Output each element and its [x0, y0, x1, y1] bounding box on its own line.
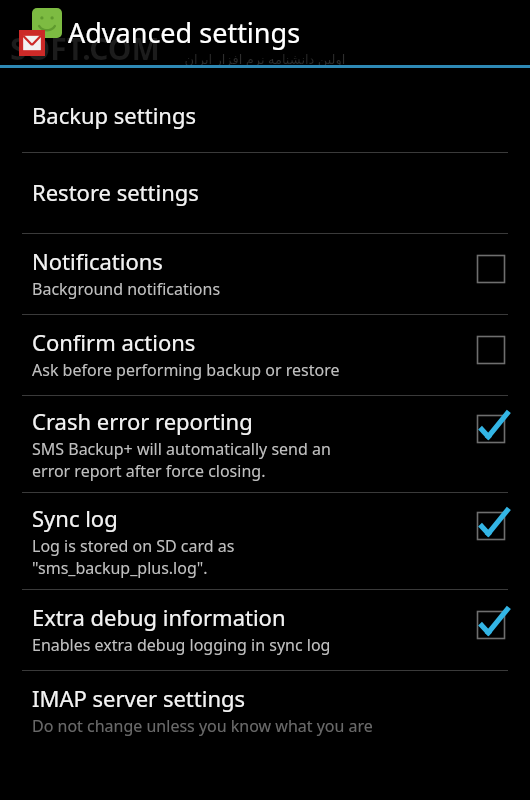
other: Unchecked [474, 252, 508, 286]
staticText: "sms_backup_plus.log". [32, 557, 208, 579]
staticText: Sync log [32, 503, 118, 533]
staticText: Ask before performing backup or restore [32, 359, 340, 381]
button[interactable]: Extra debug information [0, 590, 530, 670]
staticText: Crash error reporting [32, 406, 253, 436]
staticText: Notifications [32, 246, 163, 276]
staticText: SMS Backup+ will automatically send an [32, 438, 331, 460]
staticText: Restore settings [32, 177, 199, 207]
other: Checked [474, 509, 508, 543]
button[interactable]: Crash error reporting [0, 396, 530, 492]
button[interactable]: Confirm actions [0, 315, 530, 395]
staticText: error report after force closing. [32, 460, 266, 482]
staticText: IMAP server settings [32, 683, 246, 713]
staticText: Log is stored on SD card as [32, 535, 235, 557]
staticText: اولین دانشنامه نرم افزار ایران [0, 50, 530, 68]
staticText: Advanced settings [68, 14, 301, 51]
button[interactable]: Advanced settings [0, 0, 530, 62]
staticText: Extra debug information [32, 602, 286, 632]
staticText: Backup settings [32, 100, 196, 130]
other: Checked [474, 412, 508, 446]
button[interactable]: Backup settings [0, 84, 530, 152]
staticText: Background notifications [32, 278, 221, 300]
button[interactable]: IMAP server settings [0, 671, 530, 751]
button[interactable]: Restore settings [0, 153, 530, 233]
staticText: SOFT.COM [10, 28, 160, 69]
staticText: Confirm actions [32, 327, 196, 357]
other: Checked [474, 608, 508, 642]
other: Unchecked [474, 333, 508, 367]
staticText: Enables extra debug logging in sync log [32, 634, 331, 656]
staticText: Do not change unless you know what you a… [32, 715, 373, 737]
button[interactable]: Notifications [0, 234, 530, 314]
button[interactable]: Sync log [0, 493, 530, 589]
